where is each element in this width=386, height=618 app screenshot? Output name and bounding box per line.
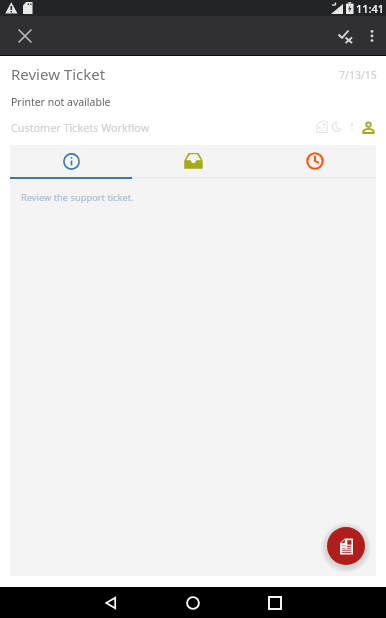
button[interactable]: History <box>254 145 376 177</box>
button[interactable]: Back <box>93 587 129 618</box>
staticText: Printer not available <box>11 95 111 109</box>
button[interactable]: Inbox <box>132 145 254 177</box>
button[interactable]: Details <box>10 145 132 177</box>
button[interactable]: More options <box>359 23 385 49</box>
staticText: Review Ticket <box>11 64 106 84</box>
staticText: 7/13/15 <box>339 68 377 82</box>
button[interactable]: New document <box>327 527 365 565</box>
button[interactable]: Attachment <box>316 121 328 133</box>
staticText: Customer Tickets Workflow <box>11 120 150 135</box>
button[interactable]: Assignee <box>362 121 375 134</box>
staticText: Review the support ticket. <box>21 191 134 204</box>
button[interactable]: Priority <box>348 122 356 130</box>
staticText: 11:41 <box>356 1 385 16</box>
button[interactable]: Home <box>175 587 211 618</box>
button[interactable]: Complete task <box>333 23 359 49</box>
button[interactable]: Close <box>13 24 37 48</box>
button[interactable]: Snooze <box>332 122 342 132</box>
button[interactable]: Recents <box>257 587 293 618</box>
